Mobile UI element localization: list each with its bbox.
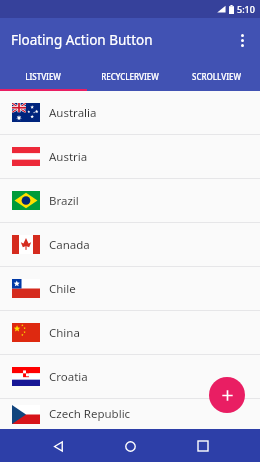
button[interactable]: China (0, 311, 260, 354)
button[interactable]: Back (43, 431, 73, 461)
staticText: SCROLLVIEW (192, 71, 241, 82)
button[interactable]: LISTVIEW (0, 62, 86, 91)
staticText: Floating Action Button (11, 31, 153, 49)
staticText: 5:10 (237, 3, 255, 15)
button[interactable]: More options (228, 26, 256, 54)
button[interactable]: Croatia (0, 355, 260, 398)
staticText: Czech Republic (49, 406, 131, 422)
staticText: Croatia (49, 369, 88, 385)
staticText: LISTVIEW (25, 71, 61, 82)
staticText: RECYCLERVIEW (101, 71, 159, 82)
button[interactable]: Chile (0, 267, 260, 310)
button[interactable]: RECYCLERVIEW (86, 62, 173, 91)
button[interactable]: Brazil (0, 179, 260, 222)
button[interactable]: Austria (0, 135, 260, 178)
staticText: Canada (49, 237, 90, 253)
staticText: Australia (49, 105, 97, 121)
button[interactable]: SCROLLVIEW (173, 62, 260, 91)
staticText: China (49, 325, 80, 341)
button[interactable]: Czech Republic (0, 399, 260, 429)
staticText: Brazil (49, 193, 79, 209)
button[interactable]: Recent apps (188, 431, 218, 461)
staticText: Chile (49, 281, 76, 297)
button[interactable]: Canada (0, 223, 260, 266)
staticText: Austria (49, 149, 88, 165)
button[interactable]: Home (115, 431, 145, 461)
button[interactable]: Australia (0, 91, 260, 134)
button[interactable]: Add (209, 377, 245, 413)
